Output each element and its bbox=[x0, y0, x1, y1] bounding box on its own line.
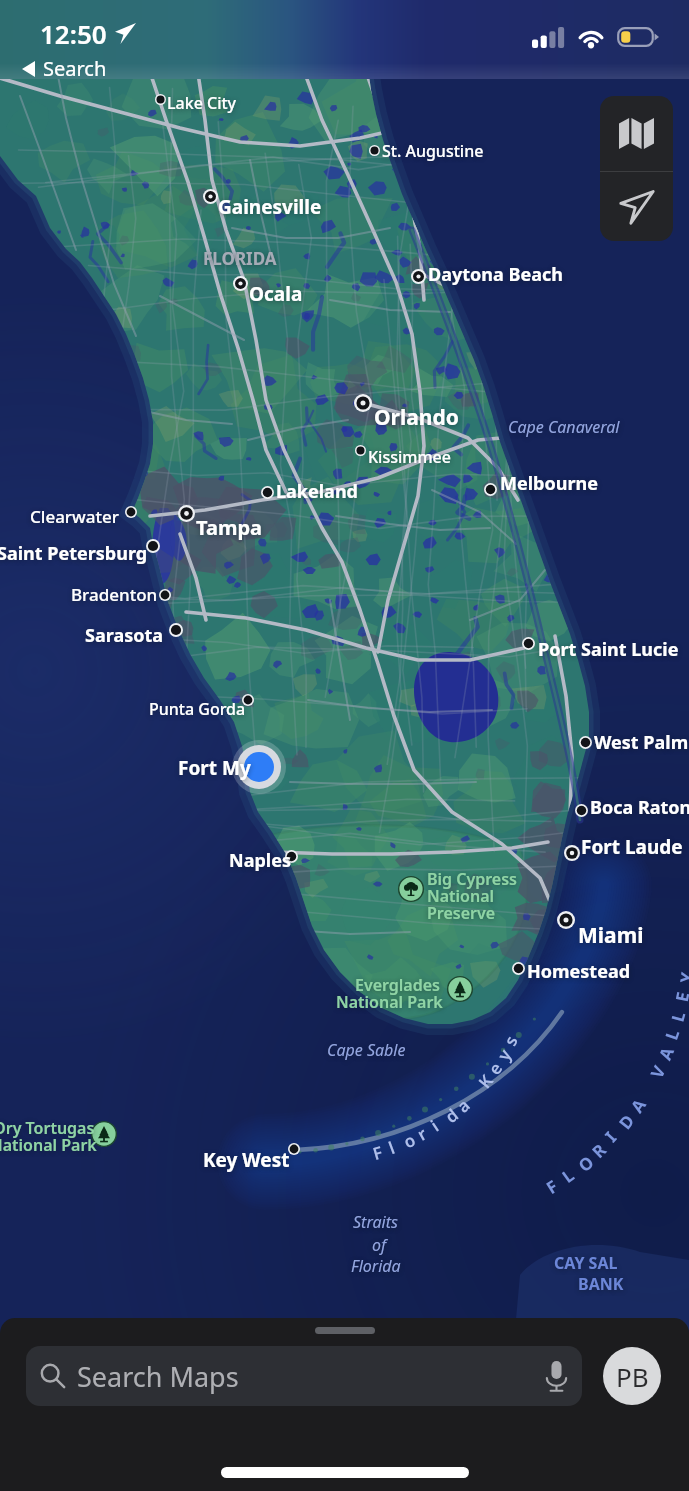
button[interactable]: Current location bbox=[600, 172, 673, 241]
staticText: Punta Gorda bbox=[149, 698, 246, 720]
staticText: Everglades bbox=[355, 974, 440, 996]
staticText: E bbox=[670, 989, 689, 1004]
staticText: Dry Tortugas bbox=[0, 1117, 95, 1139]
staticText: Search Maps bbox=[77, 1358, 239, 1395]
staticText: L bbox=[557, 1163, 579, 1188]
staticText: Orlando bbox=[374, 403, 459, 432]
staticText: Gainesville bbox=[218, 194, 322, 220]
staticText: R bbox=[587, 1138, 611, 1163]
staticText: d bbox=[440, 1103, 463, 1128]
staticText: Port Saint Lucie bbox=[538, 637, 679, 662]
staticText: Kissimmee bbox=[368, 446, 451, 468]
staticText: l bbox=[385, 1136, 398, 1159]
staticText: Y bbox=[674, 971, 689, 984]
staticText: F bbox=[370, 1140, 386, 1165]
staticText: BANK bbox=[578, 1273, 624, 1295]
staticText: Homestead bbox=[527, 959, 631, 984]
staticText: Melbourne bbox=[500, 471, 598, 496]
staticText: Sarasota bbox=[85, 623, 164, 648]
staticText: i bbox=[426, 1114, 443, 1136]
staticText: National Park bbox=[336, 991, 443, 1013]
staticText: Florida bbox=[351, 1255, 401, 1277]
staticText: I bbox=[600, 1126, 621, 1147]
staticText: Key West bbox=[203, 1147, 290, 1173]
staticText: K bbox=[473, 1070, 498, 1093]
button[interactable]: Account bbox=[603, 1347, 661, 1405]
staticText: Lake City bbox=[167, 92, 237, 114]
staticText: of bbox=[372, 1234, 387, 1256]
button[interactable]: Search Maps bbox=[26, 1346, 582, 1406]
staticText: Daytona Beach bbox=[428, 262, 563, 287]
button[interactable]: Search bbox=[14, 48, 117, 89]
staticText: Tampa bbox=[196, 514, 263, 541]
staticText: Boca Raton bbox=[590, 795, 689, 820]
staticText: Search bbox=[43, 55, 107, 82]
staticText: y bbox=[491, 1044, 516, 1065]
staticText: Fort My bbox=[178, 755, 251, 781]
staticText: V bbox=[645, 1061, 671, 1082]
staticText: Cape Canaveral bbox=[508, 416, 620, 438]
staticText: Preserve bbox=[427, 902, 496, 924]
staticText: Ocala bbox=[249, 281, 303, 307]
staticText: s bbox=[498, 1031, 523, 1050]
staticText: D bbox=[613, 1109, 640, 1134]
staticText: L bbox=[659, 1026, 684, 1043]
staticText: Lakeland bbox=[276, 479, 358, 504]
staticText: Cape Sable bbox=[327, 1039, 406, 1061]
staticText: a bbox=[452, 1094, 474, 1117]
staticText: A bbox=[625, 1094, 651, 1117]
staticText: O bbox=[573, 1150, 599, 1177]
staticText: FLORIDA bbox=[203, 247, 277, 270]
staticText: Naples bbox=[229, 848, 291, 873]
staticText: West Palm bbox=[594, 730, 689, 755]
staticText: 12:50 bbox=[40, 16, 107, 51]
staticText: Straits bbox=[353, 1211, 398, 1233]
staticText: Big Cypress bbox=[427, 868, 518, 890]
staticText: Bradenton bbox=[71, 583, 158, 606]
staticText: Miami bbox=[578, 921, 644, 950]
staticText: PB bbox=[616, 1359, 649, 1394]
staticText: o bbox=[400, 1128, 419, 1153]
staticText: A bbox=[653, 1043, 679, 1063]
staticText bbox=[462, 1084, 483, 1103]
staticText: e bbox=[483, 1058, 507, 1079]
staticText: National Park bbox=[0, 1134, 97, 1156]
staticText: CAY SAL bbox=[554, 1252, 618, 1274]
staticText: St. Augustine bbox=[382, 140, 484, 162]
staticText: National bbox=[427, 885, 495, 907]
staticText: Saint Petersburg bbox=[0, 541, 148, 566]
staticText: r bbox=[413, 1121, 431, 1145]
staticText: L bbox=[666, 1009, 689, 1024]
staticText: Fort Laude bbox=[581, 834, 683, 860]
staticText: F bbox=[542, 1174, 562, 1199]
button[interactable]: Map type bbox=[600, 96, 673, 171]
staticText: Clearwater bbox=[30, 505, 119, 528]
